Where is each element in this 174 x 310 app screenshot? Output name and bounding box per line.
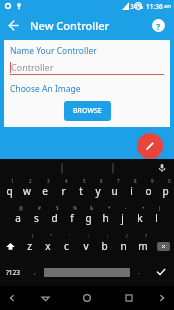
button[interactable]: p	[157, 177, 174, 204]
staticText: /	[126, 233, 128, 239]
button[interactable]: BROWSE	[64, 101, 111, 121]
staticText: ?	[156, 20, 161, 32]
staticText: d	[51, 211, 58, 225]
button[interactable]: ,	[26, 260, 44, 284]
staticText: (	[159, 205, 161, 211]
staticText: u	[111, 184, 118, 198]
button[interactable]: .	[130, 260, 148, 284]
staticText: x	[45, 239, 51, 253]
staticText: n	[120, 239, 127, 253]
button[interactable]: Back	[0, 12, 26, 38]
button[interactable]: z	[20, 232, 38, 260]
staticText: '	[69, 233, 71, 239]
button[interactable]: l	[148, 204, 165, 232]
button[interactable]: x	[38, 232, 57, 260]
button[interactable]: i	[123, 177, 140, 204]
staticText: 2	[29, 178, 32, 184]
staticText: 3	[47, 178, 50, 184]
staticText: -	[125, 205, 127, 211]
staticText: z	[27, 239, 32, 253]
staticText: w	[23, 184, 31, 198]
button[interactable]: j	[114, 204, 131, 232]
staticText: ;	[107, 233, 109, 239]
button[interactable]: t	[72, 177, 89, 204]
button[interactable]: Back	[24, 286, 66, 310]
button[interactable]: s	[27, 204, 45, 232]
staticText: v	[83, 239, 89, 253]
staticText: 4	[65, 178, 68, 184]
staticText: 1	[11, 178, 14, 184]
staticText: a	[15, 211, 21, 225]
staticText: :	[88, 233, 90, 239]
button[interactable]: Recents	[108, 286, 150, 310]
staticText: o	[145, 184, 152, 198]
staticText: 7	[117, 178, 120, 184]
staticText: &	[90, 205, 94, 211]
button[interactable]: Next	[150, 286, 174, 310]
button[interactable]: e	[36, 177, 54, 204]
staticText: Name Your Controller	[10, 45, 97, 57]
button[interactable]: Backspace	[152, 232, 174, 260]
button[interactable]: o	[140, 177, 157, 204]
staticText: k	[137, 211, 143, 225]
staticText: 34%	[130, 2, 143, 11]
staticText: m	[138, 239, 148, 253]
button[interactable]: k	[131, 204, 148, 232]
staticText: ?	[145, 233, 147, 239]
button[interactable]: a	[9, 204, 27, 232]
staticText: p	[162, 184, 169, 198]
button[interactable]: v	[76, 232, 95, 260]
staticText: @	[19, 205, 24, 211]
staticText: 9	[151, 178, 154, 184]
button[interactable]: Done	[148, 260, 174, 284]
staticText: am	[164, 3, 171, 9]
button[interactable]: f	[63, 204, 80, 232]
staticText: s	[34, 211, 39, 225]
staticText: $	[56, 205, 59, 211]
staticText: 11:36	[146, 2, 163, 11]
staticText: %	[73, 205, 77, 211]
staticText: f	[70, 211, 74, 225]
button[interactable]: g	[80, 204, 97, 232]
button[interactable]: w	[18, 177, 36, 204]
button[interactable]: Shift	[0, 232, 20, 260]
button[interactable]: Edit	[137, 133, 163, 159]
staticText: g	[85, 211, 92, 225]
button[interactable]: c	[57, 232, 76, 260]
button[interactable]: y	[89, 177, 106, 204]
staticText: !	[32, 233, 34, 239]
button[interactable]: Controller	[10, 61, 164, 75]
staticText: 5	[83, 178, 86, 184]
staticText: q	[6, 184, 13, 198]
button[interactable]: Voice input	[155, 161, 169, 175]
button[interactable]: q	[0, 177, 18, 204]
staticText: h	[102, 211, 109, 225]
staticText: i	[130, 184, 133, 198]
staticText: j	[121, 211, 124, 225]
staticText: 6	[100, 178, 103, 184]
button[interactable]: Home	[66, 286, 108, 310]
staticText: ?123	[6, 268, 20, 277]
button[interactable]: Previous	[0, 286, 24, 310]
staticText: *	[108, 205, 111, 211]
staticText: r	[61, 184, 66, 198]
button[interactable]: u	[106, 177, 123, 204]
button[interactable]: n	[114, 232, 133, 260]
button[interactable]: r	[54, 177, 72, 204]
staticText: Controller	[11, 61, 54, 73]
button[interactable]: h	[97, 204, 114, 232]
button[interactable]: m	[133, 232, 152, 260]
staticText: t	[79, 184, 83, 198]
staticText: BROWSE	[73, 106, 102, 116]
button[interactable]: ?123	[0, 260, 26, 284]
staticText: e	[42, 184, 48, 198]
staticText: ,	[34, 267, 36, 277]
button[interactable]: b	[95, 232, 114, 260]
button[interactable]: d	[45, 204, 63, 232]
staticText: y	[95, 184, 101, 198]
staticText: l	[155, 211, 158, 225]
button[interactable]: Help	[145, 12, 171, 38]
staticText: b	[101, 239, 108, 253]
staticText: "	[50, 233, 52, 239]
